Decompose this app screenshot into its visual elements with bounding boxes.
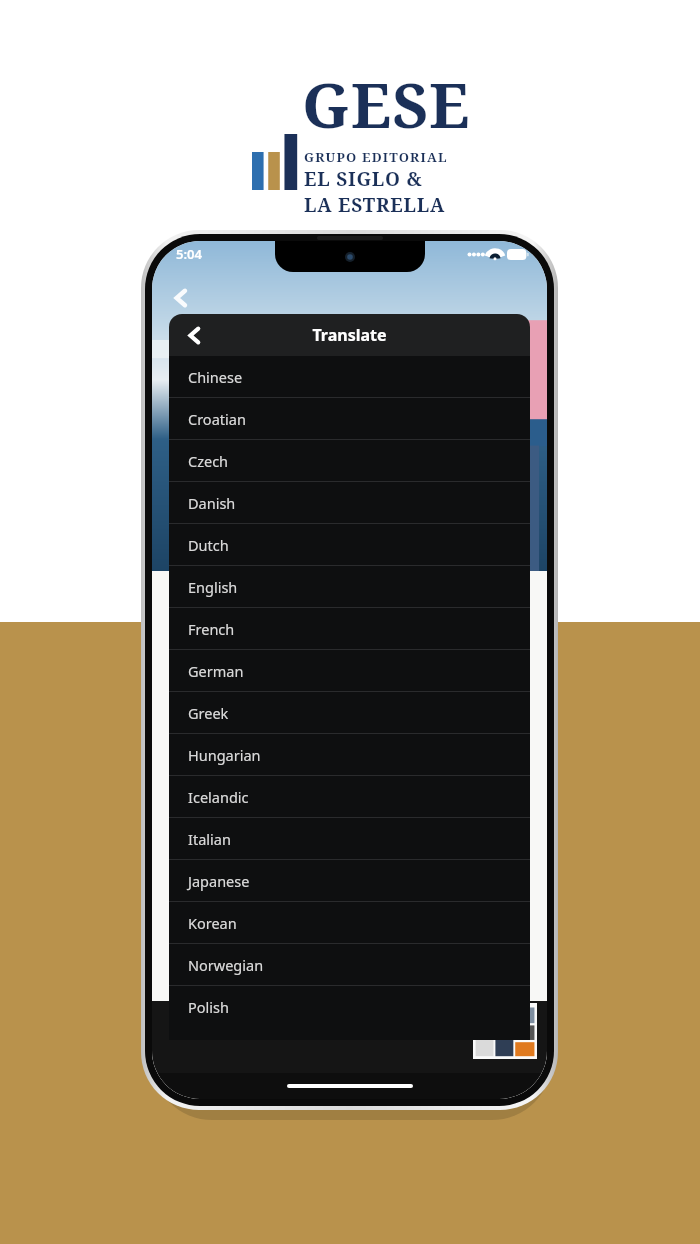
button[interactable]: Polish (169, 986, 530, 1028)
button[interactable]: Norwegian (169, 944, 530, 986)
button[interactable]: Share (170, 1009, 227, 1043)
button[interactable]: German (169, 650, 530, 692)
staticText: Hungarian (188, 745, 261, 765)
button[interactable]: Korean (169, 902, 530, 944)
staticText: English (188, 577, 238, 597)
staticText: 5:04 (176, 245, 202, 263)
button[interactable]: English (169, 566, 530, 608)
button[interactable]: Croatian (169, 398, 530, 440)
staticText: Norwegian (188, 955, 264, 975)
button[interactable]: Back (177, 318, 211, 352)
button[interactable]: Greek (169, 692, 530, 734)
button[interactable]: Icelandic (169, 776, 530, 818)
staticText: Dutch (188, 535, 229, 555)
button[interactable]: Chinese (169, 356, 530, 398)
staticText: Icelandic (188, 787, 249, 807)
staticText: Greek (188, 703, 229, 723)
button[interactable]: French (169, 608, 530, 650)
staticText: LA ESTRELLA (304, 192, 446, 218)
staticText: GESE (302, 62, 471, 146)
button[interactable]: Front page (473, 1003, 537, 1059)
button[interactable]: Bookmark (227, 1009, 283, 1043)
button[interactable]: Danish (169, 482, 530, 524)
staticText: German (188, 661, 244, 681)
staticText: Chinese (188, 367, 243, 387)
staticText: French (188, 619, 235, 639)
staticText: Italian (188, 829, 231, 849)
button[interactable]: Back (168, 285, 194, 311)
staticText: Danish (188, 493, 236, 513)
staticText: EL SIGLO & (304, 166, 423, 192)
button[interactable]: Italian (169, 818, 530, 860)
button[interactable]: Japanese (169, 860, 530, 902)
button[interactable]: Czech (169, 440, 530, 482)
button[interactable]: Hungarian (169, 734, 530, 776)
staticText: Croatian (188, 409, 246, 429)
staticText: Polish (188, 997, 229, 1017)
staticText: Translate (312, 324, 387, 346)
staticText: GRUPO EDITORIAL (304, 148, 448, 166)
staticText: Du (172, 739, 197, 762)
staticText: Korean (188, 913, 237, 933)
button[interactable]: Dutch (169, 524, 530, 566)
staticText: Japanese (188, 871, 250, 891)
staticText: Czech (188, 451, 229, 471)
